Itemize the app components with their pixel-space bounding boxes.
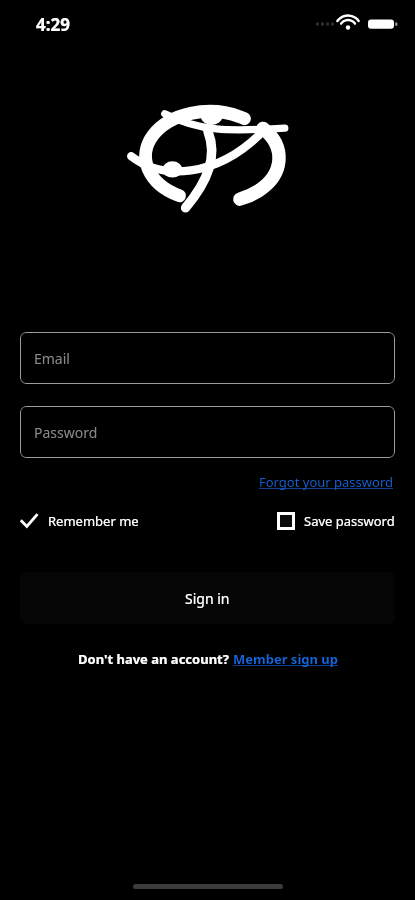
staticText: Member sign up [233,650,338,668]
staticText: Save password [304,512,395,530]
button[interactable]: Save password [277,508,395,534]
staticText: Remember me [48,512,139,530]
button[interactable]: Email [20,332,395,384]
button[interactable]: Sign in [20,572,395,624]
staticText: Sign in [185,589,230,608]
button[interactable]: Password [20,406,395,458]
button[interactable]: Forgot your password [257,471,395,493]
button[interactable]: Remember me [20,508,139,534]
staticText: 4:29 [36,13,70,36]
staticText: Password [34,423,98,442]
button[interactable]: Member sign up [233,650,338,668]
staticText: Forgot your password [259,473,393,491]
staticText: Email [34,349,70,368]
staticText: Don't have an account? [78,650,233,668]
